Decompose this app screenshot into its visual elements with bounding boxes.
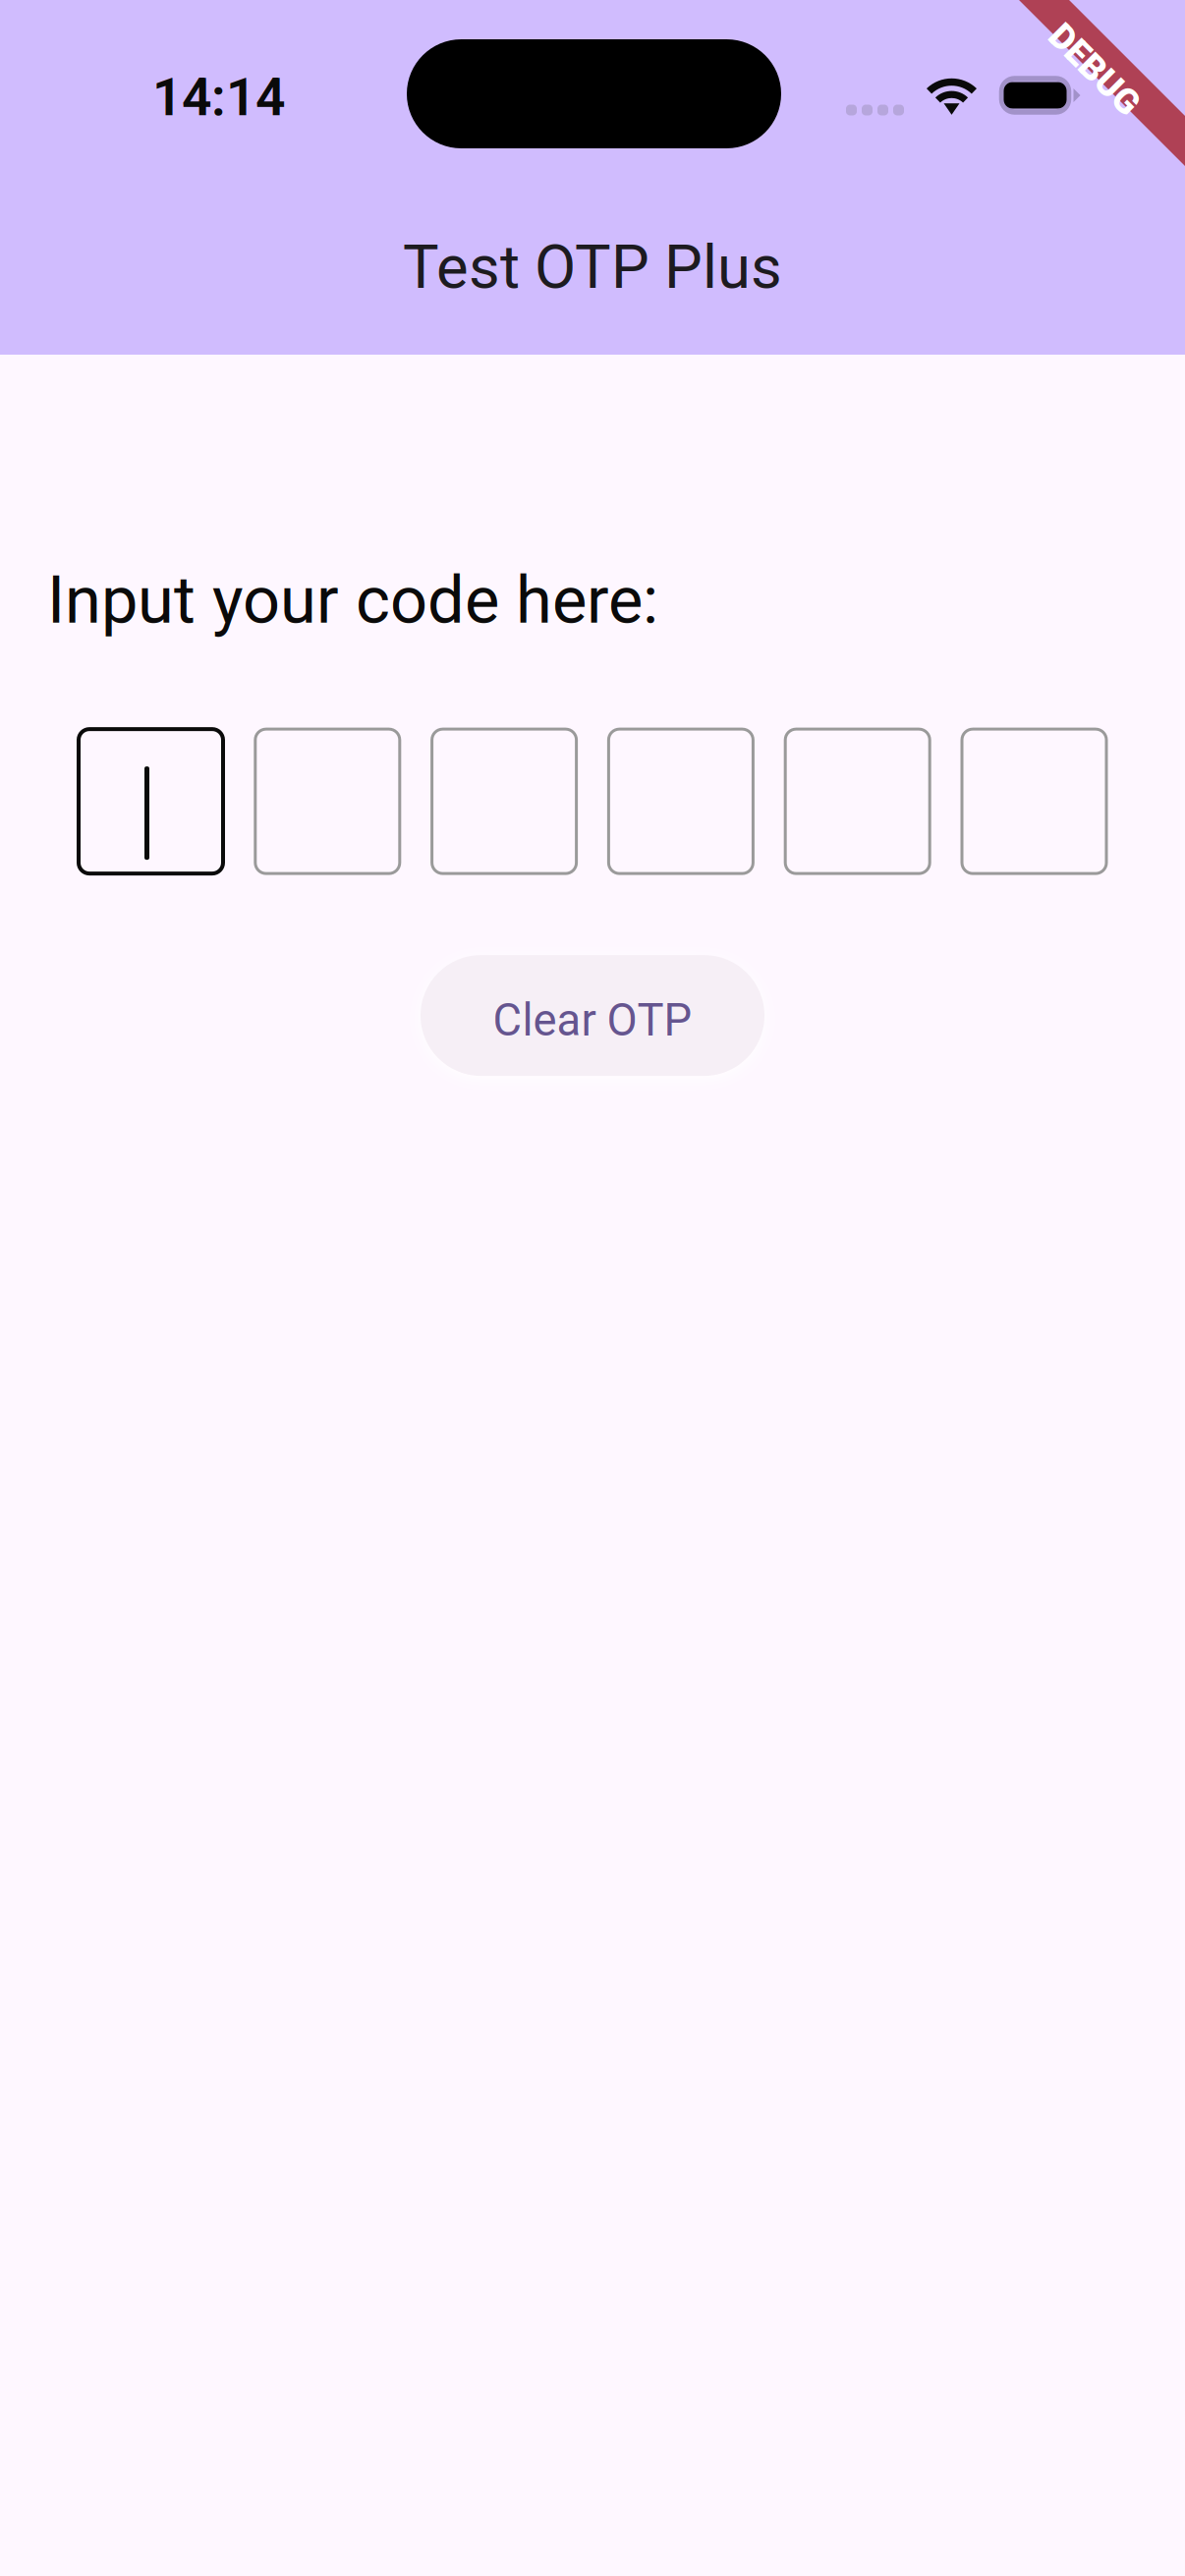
staticText: Test OTP Plus: [403, 232, 782, 303]
button[interactable]: OTP digit 1: [79, 729, 223, 874]
staticText: Input your code here:: [47, 562, 658, 639]
button[interactable]: OTP digit 4: [609, 729, 753, 874]
button[interactable]: OTP digit 3: [432, 729, 576, 874]
button[interactable]: Clear OTP: [421, 955, 764, 1076]
button[interactable]: OTP digit 6: [962, 729, 1106, 874]
staticText: DEBUG: [1038, 49, 1151, 90]
staticText: 14:14: [152, 67, 285, 128]
button[interactable]: OTP digit 2: [255, 729, 400, 874]
button[interactable]: OTP digit 5: [785, 729, 930, 874]
staticText: Clear OTP: [493, 994, 692, 1047]
